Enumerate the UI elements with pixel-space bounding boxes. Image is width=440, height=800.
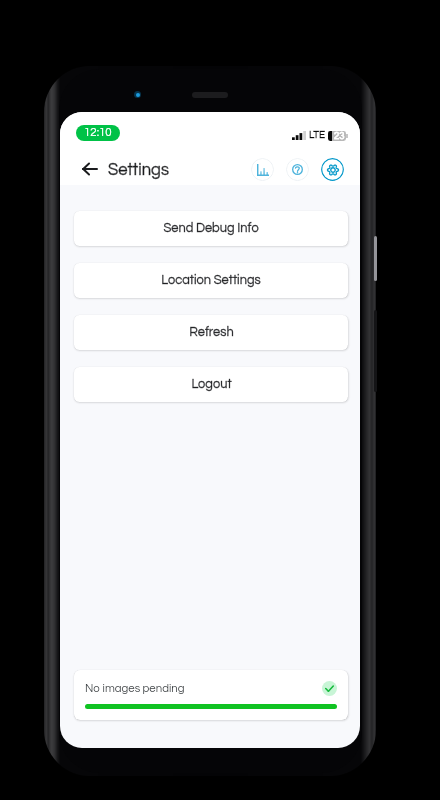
staticText: 23 [334, 131, 345, 141]
staticText: Send Debug Info [163, 222, 259, 235]
staticText: Send Debug Info [163, 222, 259, 235]
staticText: Refresh [189, 326, 234, 339]
staticText: No images pending [85, 683, 185, 695]
staticText: Settings [108, 161, 169, 178]
staticText: Location Settings [161, 274, 261, 287]
staticText: Refresh [189, 326, 234, 339]
button[interactable]: Statistics [251, 158, 274, 181]
button[interactable]: Settings [321, 158, 344, 181]
button[interactable]: Location Settings [74, 263, 348, 298]
staticText: Settings [108, 161, 169, 178]
button[interactable]: Refresh [74, 315, 348, 350]
button[interactable]: Back [78, 157, 100, 181]
button[interactable]: Logout [74, 367, 348, 402]
staticText: LTE [309, 130, 325, 140]
staticText: Logout [191, 378, 232, 391]
button[interactable]: Help [286, 158, 309, 181]
staticText: Location Settings [161, 274, 261, 287]
staticText: 12:10 [84, 127, 112, 139]
staticText: Logout [191, 378, 232, 391]
button[interactable]: Send Debug Info [74, 211, 348, 246]
staticText: 23 [334, 131, 345, 141]
